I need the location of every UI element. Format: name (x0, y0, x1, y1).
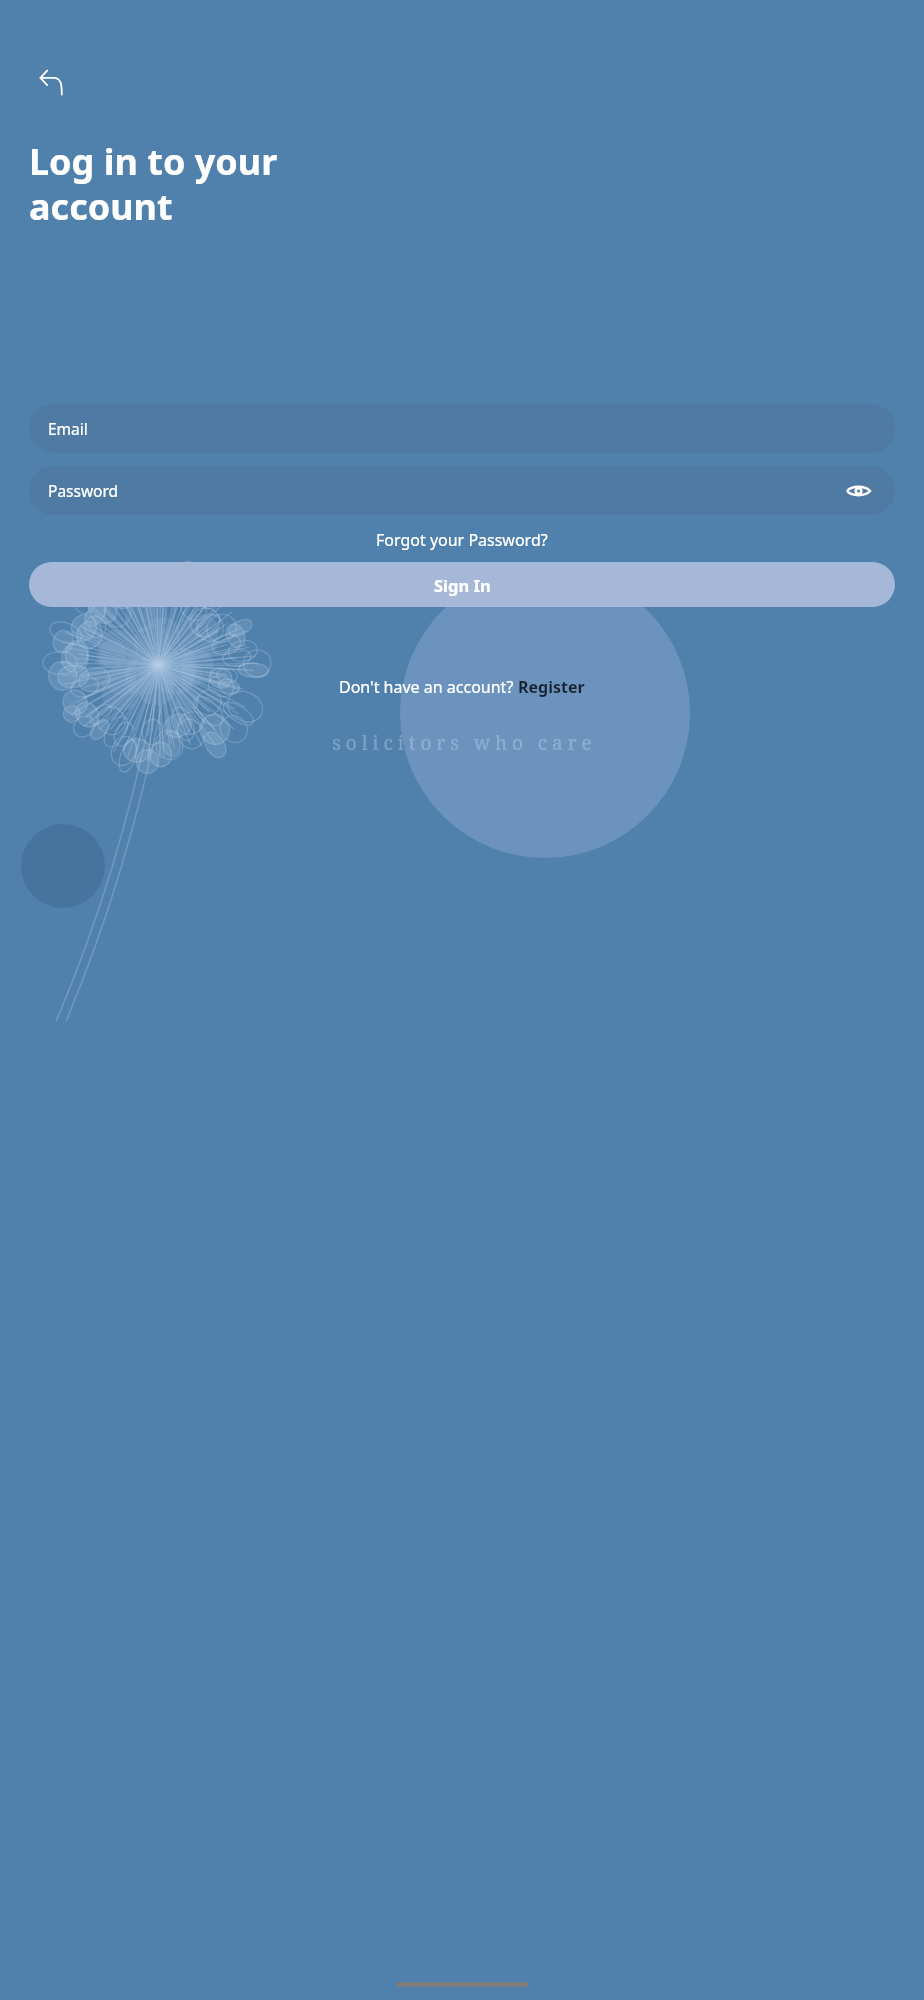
button[interactable]: Forgot your Password? (368, 526, 556, 554)
staticText: Forgot your Password? (376, 529, 548, 551)
staticText: Sign In (434, 574, 491, 596)
staticText: Log in to your account (29, 137, 278, 230)
staticText: Don't have an account? (339, 676, 518, 698)
staticText: Register (518, 676, 585, 698)
button[interactable]: Don't have an account? (333, 672, 591, 702)
button[interactable]: Email (29, 404, 895, 453)
button[interactable]: Password (29, 466, 895, 515)
staticText: Email (48, 418, 88, 439)
button[interactable]: Back (29, 60, 73, 104)
staticText: Password (48, 480, 843, 501)
button[interactable]: Show password (843, 476, 873, 506)
staticText: s o l i c i t o r s w h o c a r e (332, 730, 592, 756)
button[interactable]: Sign In (29, 562, 895, 607)
